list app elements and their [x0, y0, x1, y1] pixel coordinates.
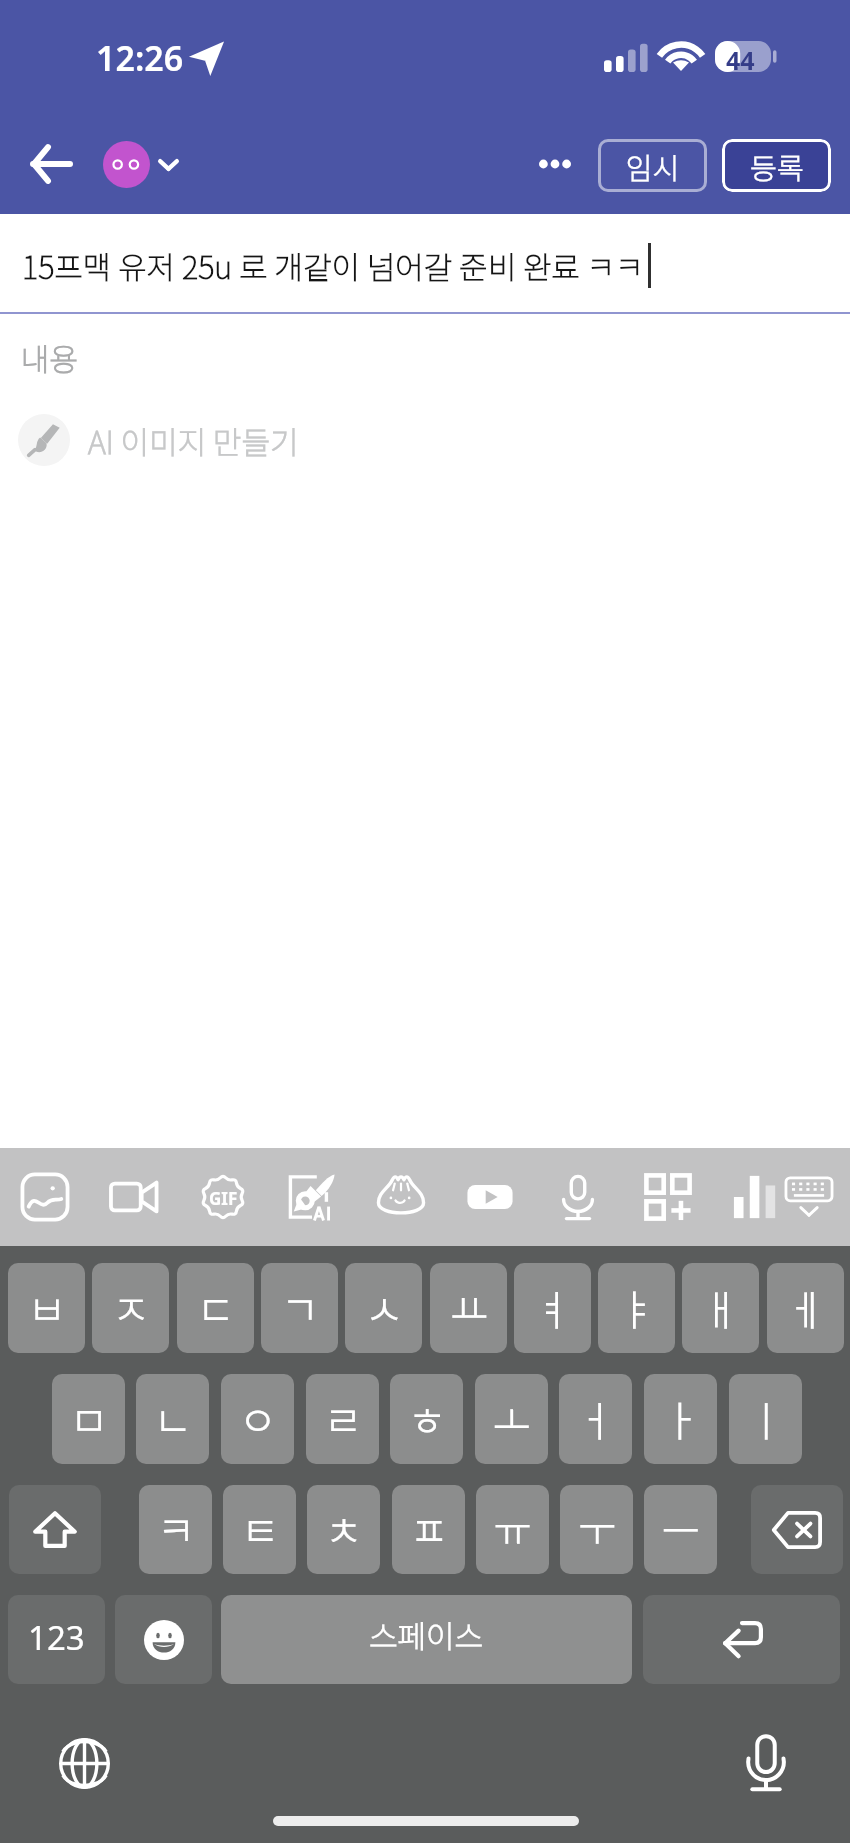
button[interactable]: ㅜ: [560, 1485, 633, 1574]
staticText: ㅋ: [157, 1498, 195, 1557]
button[interactable]: ㅁ: [52, 1374, 125, 1464]
staticText: ㅊ: [325, 1498, 363, 1557]
button[interactable]: ㅗ: [475, 1374, 548, 1464]
button[interactable]: ㅊ: [307, 1485, 380, 1574]
button[interactable]: 등록: [722, 139, 831, 192]
button[interactable]: ㄴ: [136, 1374, 209, 1464]
button[interactable]: AI 이미지 만들기: [0, 400, 850, 480]
button[interactable]: 스페이스: [221, 1595, 632, 1684]
button[interactable]: ㅠ: [476, 1485, 549, 1574]
button[interactable]: ㅂ: [8, 1263, 85, 1353]
button[interactable]: AI image: [276, 1155, 348, 1239]
staticText: 임시: [626, 145, 680, 187]
button[interactable]: ㅓ: [559, 1374, 632, 1464]
staticText: ㅇ: [239, 1388, 277, 1447]
button[interactable]: [96, 145, 190, 187]
button[interactable]: ㅡ: [644, 1485, 717, 1574]
button[interactable]: ㅕ: [514, 1263, 591, 1353]
button[interactable]: More options: [522, 136, 588, 192]
staticText: GIF: [209, 1187, 238, 1210]
button[interactable]: ㅍ: [392, 1485, 465, 1574]
staticText: ㅕ: [534, 1277, 572, 1336]
staticText: ㅍ: [410, 1498, 448, 1557]
button[interactable]: ㅌ: [223, 1485, 296, 1574]
button[interactable]: Back: [16, 126, 84, 202]
button[interactable]: Hide keyboard: [773, 1155, 845, 1239]
button[interactable]: ㅑ: [598, 1263, 675, 1353]
button[interactable]: Enter: [643, 1595, 840, 1684]
button[interactable]: ㄹ: [306, 1374, 379, 1464]
staticText: ㅏ: [662, 1388, 700, 1447]
staticText: ㅔ: [787, 1277, 825, 1336]
button[interactable]: ㄱ: [261, 1263, 338, 1353]
button[interactable]: ㅔ: [767, 1263, 844, 1353]
staticText: ㄹ: [324, 1388, 362, 1447]
button[interactable]: ㅏ: [644, 1374, 717, 1464]
staticText: 15프맥 유저 25u 로 개같이 넘어갈 준비 완료 ㅋㅋ: [22, 243, 644, 288]
staticText: 스페이스: [369, 1612, 484, 1657]
staticText: 44: [726, 43, 755, 74]
staticText: ㄷ: [197, 1277, 235, 1336]
button[interactable]: Poll: [720, 1155, 792, 1239]
staticText: ㅐ: [702, 1277, 740, 1336]
staticText: 12:26: [96, 35, 184, 81]
staticText: AI 이미지 만들기: [88, 418, 299, 463]
button[interactable]: GIF: [187, 1155, 259, 1239]
button[interactable]: Apps: [632, 1155, 704, 1239]
button[interactable]: Emoji: [115, 1595, 212, 1684]
staticText: ㅌ: [241, 1498, 279, 1557]
staticText: ㅂ: [28, 1277, 66, 1336]
button[interactable]: 123: [8, 1595, 105, 1684]
staticText: ㅡ: [662, 1498, 700, 1557]
button[interactable]: Shift: [9, 1485, 101, 1574]
button[interactable]: 임시: [598, 139, 707, 192]
staticText: ㅅ: [365, 1277, 403, 1336]
staticText: 등록: [750, 145, 804, 187]
button[interactable]: ㅐ: [682, 1263, 759, 1353]
button[interactable]: Photo: [9, 1155, 81, 1239]
button[interactable]: ㅇ: [221, 1374, 294, 1464]
button[interactable]: ㄷ: [177, 1263, 254, 1353]
staticText: ㅠ: [494, 1498, 532, 1557]
staticText: ㅁ: [70, 1388, 108, 1447]
button[interactable]: Backspace: [751, 1485, 843, 1574]
staticText: ㅛ: [450, 1277, 488, 1336]
button[interactable]: Voice: [542, 1155, 614, 1239]
staticText: ㅜ: [578, 1498, 616, 1557]
button[interactable]: ㅎ: [390, 1374, 463, 1464]
staticText: ㅑ: [618, 1277, 656, 1336]
staticText: ㅈ: [112, 1277, 150, 1336]
staticText: 123: [28, 1615, 85, 1660]
button[interactable]: ㅅ: [345, 1263, 422, 1353]
button[interactable]: ㅛ: [430, 1263, 507, 1353]
staticText: ㅣ: [747, 1388, 785, 1447]
staticText: ㅎ: [408, 1388, 446, 1447]
staticText: ㄴ: [154, 1388, 192, 1447]
button[interactable]: Video: [98, 1155, 170, 1239]
button[interactable]: ㅣ: [729, 1374, 802, 1464]
button[interactable]: ㅈ: [92, 1263, 169, 1353]
staticText: ㄱ: [281, 1277, 319, 1336]
staticText: 내용: [21, 335, 79, 380]
button[interactable]: Sticker: [365, 1155, 437, 1239]
staticText: ㅗ: [493, 1388, 531, 1447]
button[interactable]: Voice input: [732, 1727, 800, 1799]
staticText: ㅓ: [577, 1388, 615, 1447]
button[interactable]: ㅋ: [139, 1485, 212, 1574]
button[interactable]: Change language: [50, 1729, 118, 1797]
button[interactable]: YouTube: [454, 1155, 526, 1239]
